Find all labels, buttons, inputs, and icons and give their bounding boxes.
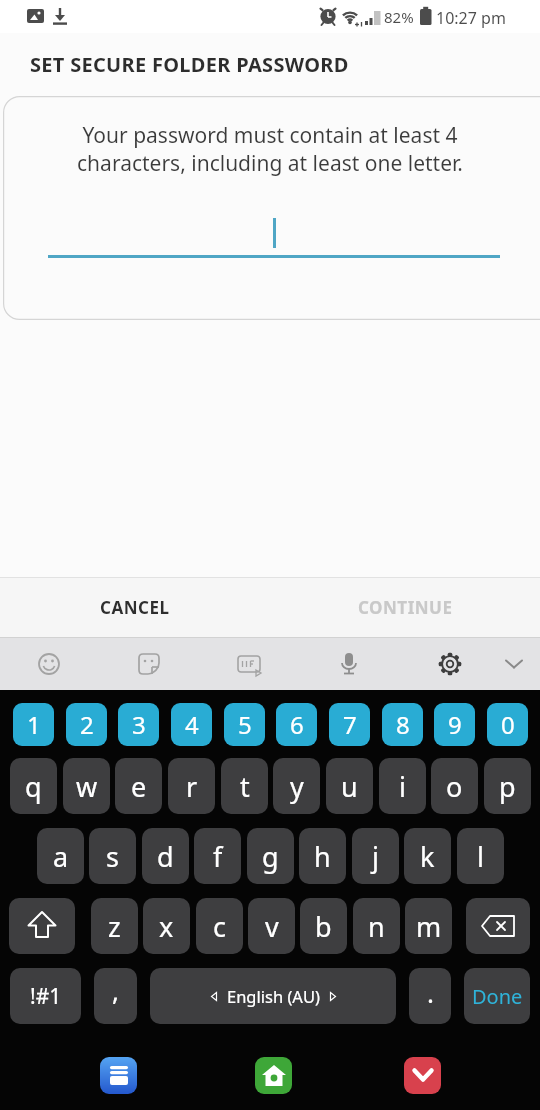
button[interactable]: 5 [224, 703, 265, 746]
staticText: n [368, 908, 385, 945]
button[interactable]: j [352, 828, 399, 884]
button[interactable]: m [405, 898, 452, 954]
button[interactable]: 1 [13, 703, 54, 746]
button[interactable] [100, 1057, 137, 1094]
staticText: w [76, 768, 98, 805]
button[interactable] [0, 637, 90, 690]
button[interactable]: q [10, 758, 57, 814]
button[interactable]: h [299, 828, 346, 884]
button[interactable] [466, 898, 530, 954]
button[interactable]: e [115, 758, 162, 814]
button[interactable]: x [143, 898, 190, 954]
button[interactable]: b [300, 898, 347, 954]
button[interactable]: 9 [434, 703, 475, 746]
button[interactable]: !#1 [10, 968, 81, 1024]
staticText: 5 [238, 708, 252, 741]
staticText: z [108, 908, 121, 945]
staticText: x [159, 908, 174, 945]
button[interactable]: f [194, 828, 241, 884]
staticText: t [240, 768, 250, 805]
staticText: 2 [80, 708, 94, 741]
button[interactable]: a [37, 828, 84, 884]
staticText: k [420, 838, 435, 875]
button[interactable]: s [89, 828, 136, 884]
staticText: 1 [27, 708, 41, 741]
staticText: 10:27 pm [436, 7, 506, 29]
staticText: 3 [132, 708, 146, 741]
button[interactable]: 7 [329, 703, 370, 746]
button[interactable]: 8 [382, 703, 423, 746]
button[interactable]: 4 [171, 703, 212, 746]
staticText: Your password must contain at least 4 ch… [20, 121, 520, 177]
button[interactable]: d [142, 828, 189, 884]
button[interactable]: t [221, 758, 268, 814]
staticText: v [265, 908, 279, 945]
staticText: 6 [290, 708, 304, 741]
staticText: 8 [396, 708, 410, 741]
button[interactable] [255, 1057, 292, 1094]
staticText: o [446, 768, 463, 805]
staticText: m [416, 908, 442, 945]
button[interactable]: i [379, 758, 426, 814]
button[interactable]: g [247, 828, 294, 884]
button[interactable]: 6 [276, 703, 317, 746]
staticText: b [315, 908, 332, 945]
staticText: i [399, 768, 406, 805]
button[interactable]: v [248, 898, 295, 954]
button[interactable]: . [409, 968, 451, 1024]
button[interactable]: k [404, 828, 451, 884]
button[interactable]: c [196, 898, 243, 954]
staticText: y [290, 768, 304, 805]
staticText: Done [472, 983, 523, 1010]
button[interactable]: o [431, 758, 478, 814]
staticText: g [262, 838, 279, 875]
staticText: u [341, 768, 358, 805]
staticText: CANCEL [100, 596, 170, 619]
button[interactable]: z [91, 898, 138, 954]
staticText: c [213, 908, 226, 945]
button[interactable]: CONTINUE [270, 578, 540, 637]
staticText: CONTINUE [358, 596, 453, 619]
staticText: l [477, 838, 484, 875]
staticText: s [106, 838, 119, 875]
staticText: 7 [343, 708, 357, 741]
button[interactable]: n [353, 898, 400, 954]
staticText: h [314, 838, 331, 875]
staticText: d [157, 838, 174, 875]
staticText: 4 [185, 708, 199, 741]
button[interactable]: , [94, 968, 137, 1024]
button[interactable] [404, 1057, 441, 1094]
staticText: SET SECURE FOLDER PASSWORD [30, 51, 349, 78]
button[interactable] [270, 637, 360, 690]
button[interactable]: y [273, 758, 320, 814]
button[interactable]: 3 [118, 703, 159, 746]
staticText: 9 [448, 708, 462, 741]
button[interactable]: r [168, 758, 215, 814]
button[interactable]: w [63, 758, 110, 814]
button[interactable]: u [326, 758, 373, 814]
button[interactable]: 0 [487, 703, 528, 746]
staticText: q [25, 768, 42, 805]
button[interactable] [90, 637, 180, 690]
staticText: e [131, 768, 147, 805]
button[interactable]: l [457, 828, 504, 884]
staticText: 0 [501, 708, 515, 741]
button[interactable]: p [484, 758, 531, 814]
button[interactable] [9, 898, 75, 954]
button[interactable] [450, 637, 540, 690]
staticText: j [372, 838, 379, 875]
staticText: English (AU) [227, 985, 320, 1007]
staticText: , [112, 973, 119, 1008]
button[interactable]: English (AU) [150, 968, 396, 1024]
staticText: f [213, 838, 223, 875]
button[interactable]: 2 [66, 703, 107, 746]
staticText: !#1 [30, 982, 62, 1011]
button[interactable]: CANCEL [0, 578, 270, 637]
button[interactable] [180, 637, 270, 690]
staticText: 82% [384, 7, 414, 27]
staticText: a [53, 838, 69, 875]
staticText: p [499, 768, 516, 805]
staticText: . [427, 975, 434, 1010]
button[interactable]: Done [464, 968, 530, 1024]
button[interactable] [360, 637, 450, 690]
